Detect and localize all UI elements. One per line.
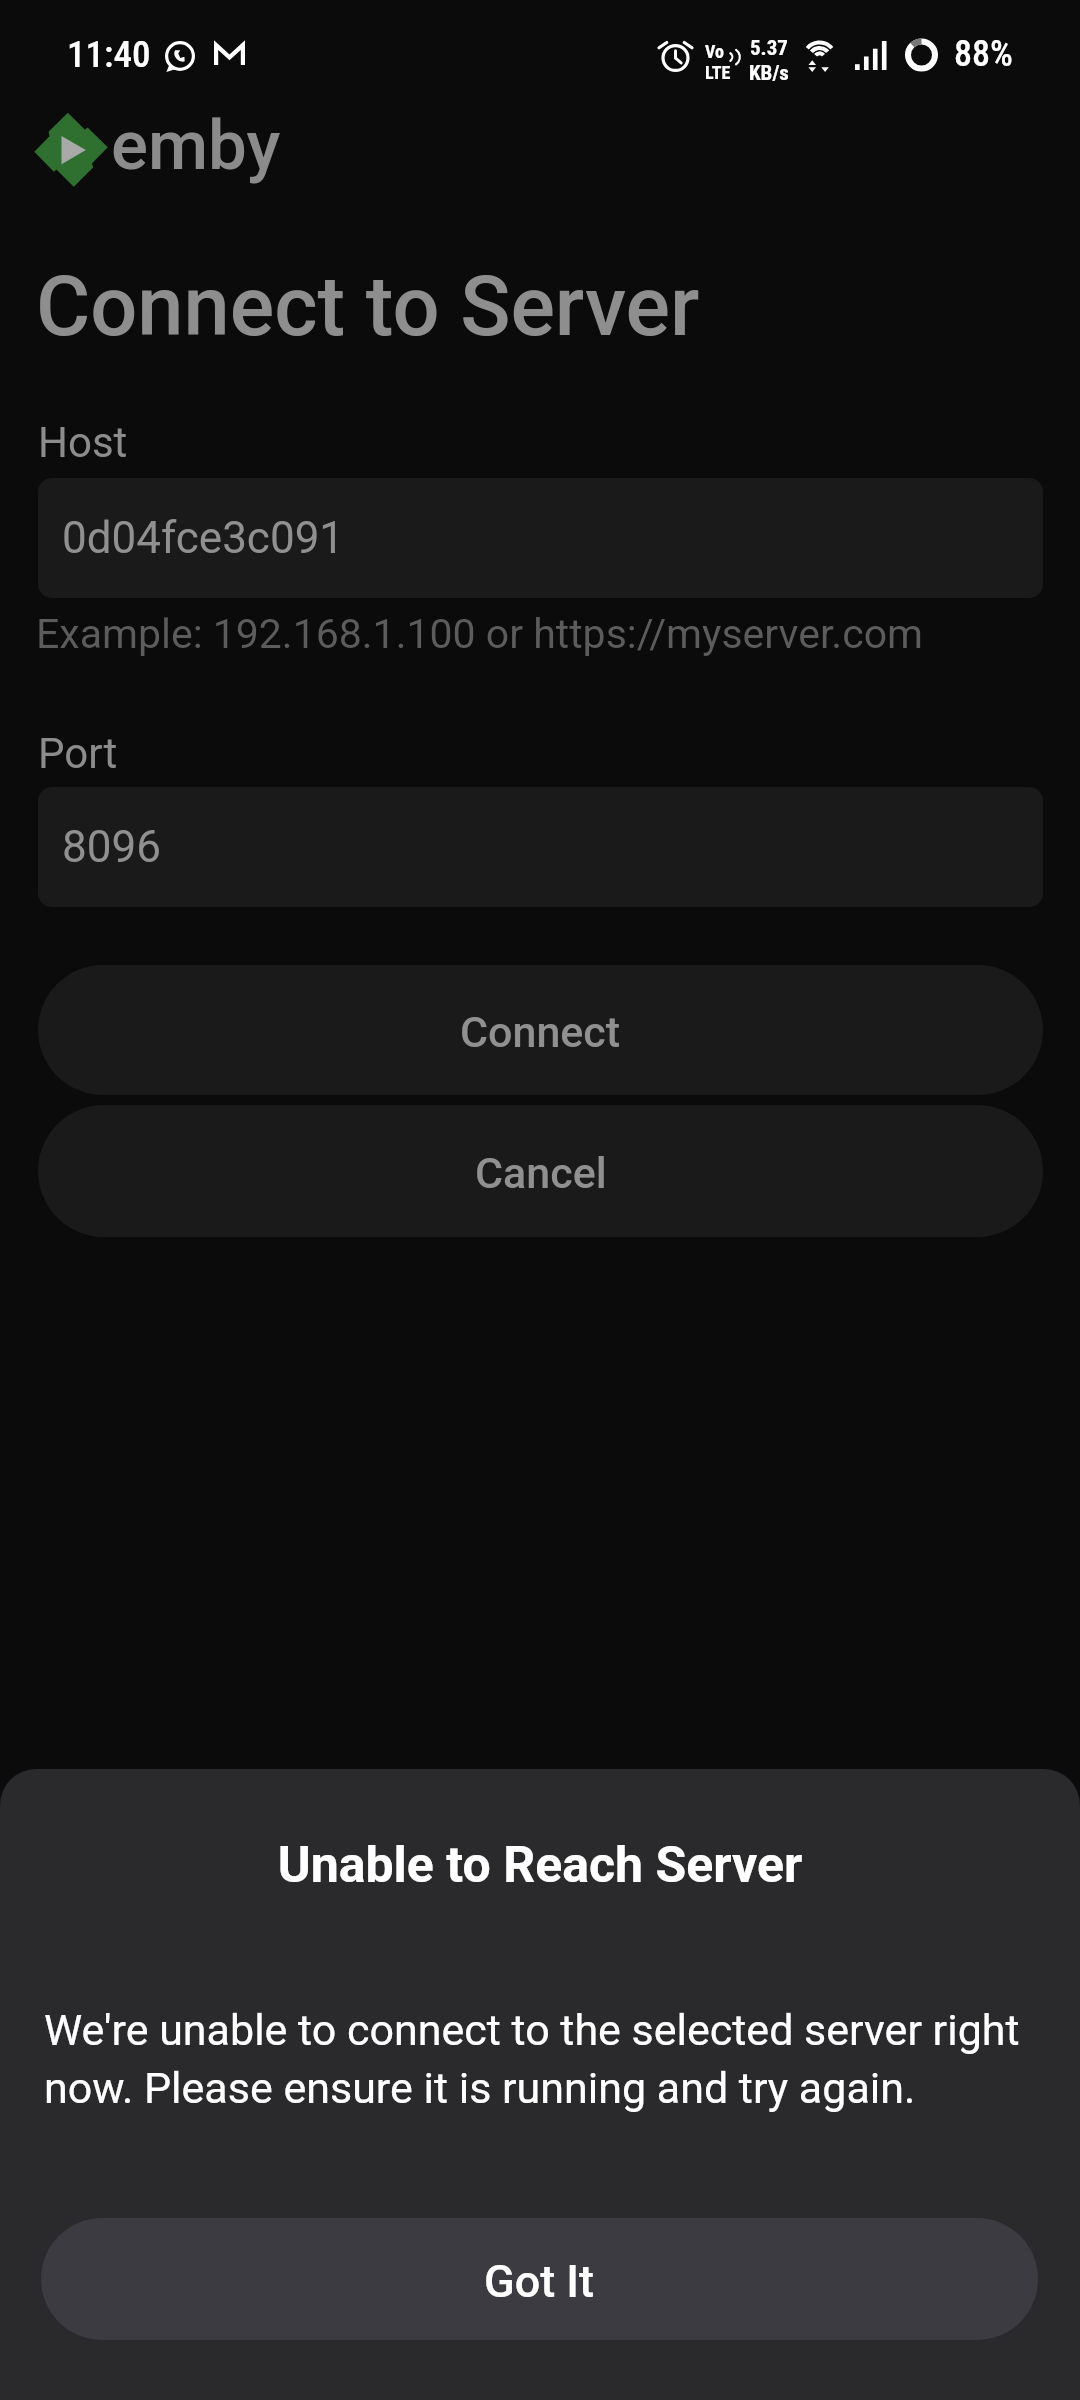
- staticText: 11:40: [67, 33, 151, 76]
- staticText: We're unable to connect to the selected …: [44, 2005, 1034, 2113]
- staticText: Connect to Server: [36, 258, 700, 355]
- staticText: Cancel: [475, 1148, 607, 1198]
- staticText: Got It: [484, 2255, 595, 2308]
- staticText: Example: 192.168.1.100 or https://myserv…: [36, 610, 923, 658]
- staticText: 88%: [954, 33, 1013, 75]
- staticText: KB/s: [749, 61, 789, 86]
- button[interactable]: 0d04fce3c091: [38, 478, 1043, 598]
- staticText: Vo: [705, 41, 724, 62]
- staticText: Host: [38, 418, 128, 467]
- other: Gmail: [214, 43, 245, 67]
- staticText: Unable to Reach Server: [0, 1836, 1080, 1895]
- other: Emby: [34, 112, 108, 187]
- staticText: emby: [111, 105, 281, 186]
- other: Battery 88 percent: [905, 38, 938, 72]
- staticText: Connect: [460, 1007, 621, 1057]
- staticText: 8096: [62, 821, 161, 873]
- button[interactable]: 8096: [38, 787, 1043, 907]
- other: Mobile signal: [855, 41, 887, 70]
- staticText: 0d04fce3c091: [62, 512, 345, 564]
- other: WhatsApp: [165, 41, 195, 73]
- other: Alarm: [661, 40, 690, 70]
- staticText: LTE: [705, 62, 731, 83]
- staticText: 5.37: [750, 36, 788, 61]
- staticText: Port: [38, 729, 118, 778]
- button[interactable]: Cancel: [38, 1105, 1043, 1237]
- button[interactable]: Got It: [41, 2218, 1038, 2340]
- button[interactable]: Connect: [38, 965, 1043, 1095]
- other: Wi-Fi: [803, 40, 836, 68]
